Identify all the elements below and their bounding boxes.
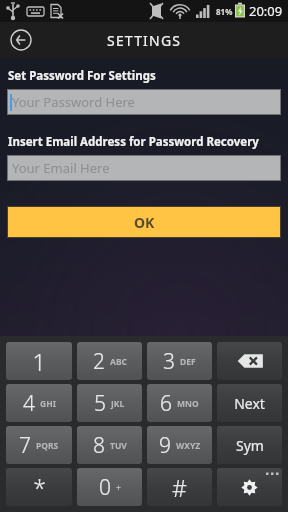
button[interactable]: 4: [6, 384, 72, 422]
button[interactable]: Back: [6, 25, 36, 55]
staticText: WXYZ: [176, 440, 201, 452]
staticText: Sym: [236, 436, 264, 455]
staticText: ABC: [110, 356, 127, 368]
staticText: 81%: [216, 6, 233, 17]
staticText: GHI: [40, 398, 56, 410]
staticText: *: [33, 472, 46, 503]
staticText: PQRS: [36, 440, 59, 452]
button[interactable]: Next: [217, 384, 282, 422]
button[interactable]: Delete: [217, 342, 282, 380]
staticText: 3: [163, 347, 175, 376]
button[interactable]: Your Password Here: [7, 89, 281, 115]
button[interactable]: Keyboard settings: [217, 468, 282, 506]
staticText: 6: [160, 389, 172, 418]
button[interactable]: 5: [77, 384, 142, 422]
button[interactable]: 2: [77, 342, 142, 380]
button[interactable]: 3: [147, 342, 212, 380]
staticText: Set Password For Settings: [8, 68, 156, 84]
staticText: Your Password Here: [12, 93, 135, 111]
staticText: TUV: [110, 440, 127, 452]
staticText: Next: [234, 394, 265, 413]
staticText: JKL: [111, 398, 125, 410]
button[interactable]: 6: [147, 384, 212, 422]
button[interactable]: 0: [77, 468, 142, 506]
staticText: DEF: [180, 356, 196, 368]
staticText: 5: [94, 389, 106, 418]
button[interactable]: 7: [6, 426, 72, 464]
staticText: MNO: [177, 398, 199, 410]
button[interactable]: Sym: [217, 426, 282, 464]
staticText: Your Email Here: [12, 159, 110, 177]
staticText: OK: [134, 213, 155, 232]
staticText: Insert Email Address for Password Recove…: [8, 134, 259, 150]
staticText: 9: [159, 431, 171, 460]
button[interactable]: 8: [77, 426, 142, 464]
staticText: 0: [99, 473, 111, 502]
staticText: 1: [32, 346, 46, 377]
staticText: 7: [19, 431, 31, 460]
staticText: SETTINGS: [107, 31, 182, 50]
staticText: 2: [93, 347, 105, 376]
button[interactable]: 9: [147, 426, 212, 464]
staticText: 4: [23, 389, 35, 418]
button[interactable]: 1: [6, 342, 72, 380]
button[interactable]: OK: [7, 206, 281, 238]
staticText: 20:09: [249, 2, 283, 20]
staticText: #: [172, 472, 187, 503]
staticText: +: [116, 482, 121, 494]
button[interactable]: Your Email Here: [7, 155, 281, 181]
staticText: 8: [93, 431, 105, 460]
button[interactable]: *: [6, 468, 72, 506]
button[interactable]: #: [147, 468, 212, 506]
